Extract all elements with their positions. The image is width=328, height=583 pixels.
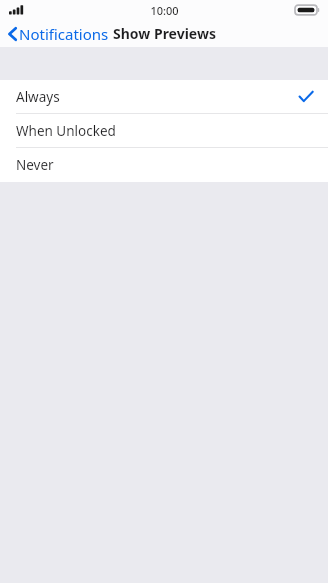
button[interactable]: When Unlocked xyxy=(0,114,328,148)
staticText: Show Previews xyxy=(113,24,216,43)
staticText: 10:00 xyxy=(150,3,179,18)
staticText: When Unlocked xyxy=(16,122,116,140)
other: Selected xyxy=(299,91,313,102)
staticText: Never xyxy=(16,156,54,174)
staticText: Notifications xyxy=(19,24,109,44)
button[interactable]: Always xyxy=(0,80,328,114)
staticText: Always xyxy=(16,88,60,106)
button[interactable]: Notifications xyxy=(0,22,117,46)
button[interactable]: Never xyxy=(0,148,328,182)
